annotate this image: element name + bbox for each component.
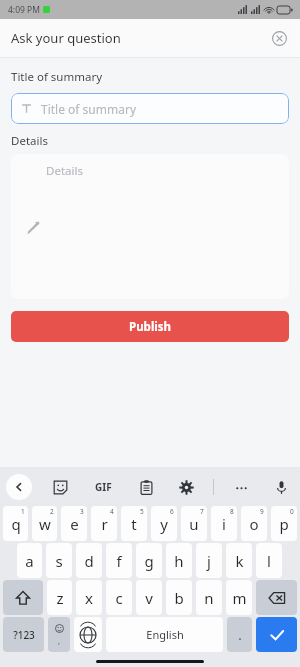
button[interactable]: n bbox=[196, 580, 222, 615]
staticText: p bbox=[279, 514, 289, 534]
button[interactable]: g bbox=[136, 543, 162, 578]
button[interactable]: p bbox=[271, 506, 297, 541]
staticText: u bbox=[189, 514, 199, 534]
button[interactable]: v bbox=[136, 580, 162, 615]
staticText: a bbox=[25, 551, 34, 571]
staticText: GIF bbox=[95, 480, 112, 494]
button[interactable]: u bbox=[181, 506, 207, 541]
button[interactable]: Done bbox=[256, 617, 297, 652]
staticText: 1 bbox=[21, 507, 25, 516]
button[interactable]: t bbox=[121, 506, 147, 541]
button[interactable]: Sticker bbox=[47, 474, 73, 500]
button[interactable]: Shift bbox=[3, 580, 43, 615]
staticText: d bbox=[84, 551, 94, 571]
staticText: x bbox=[85, 588, 93, 608]
staticText: m bbox=[232, 588, 247, 608]
button[interactable]: GIF bbox=[88, 474, 118, 500]
button[interactable]: ?123 bbox=[3, 617, 44, 652]
staticText: 8 bbox=[230, 507, 234, 516]
button[interactable]: Title of summary bbox=[11, 93, 289, 124]
button[interactable]: s bbox=[46, 543, 72, 578]
button[interactable]: Emoji bbox=[48, 617, 70, 652]
staticText: 2 bbox=[50, 507, 54, 516]
button[interactable]: Voice input bbox=[268, 474, 294, 500]
staticText: b bbox=[174, 588, 184, 608]
button[interactable]: Backspace bbox=[256, 580, 297, 615]
button[interactable]: r bbox=[91, 506, 117, 541]
button[interactable]: q bbox=[3, 506, 28, 541]
staticText: Title of summary bbox=[11, 69, 103, 85]
staticText: j bbox=[207, 551, 211, 571]
staticText: r bbox=[101, 514, 108, 534]
button[interactable]: Back bbox=[6, 474, 32, 500]
button[interactable]: f bbox=[106, 543, 132, 578]
button[interactable]: Settings bbox=[173, 474, 199, 500]
staticText: 9 bbox=[260, 507, 264, 516]
staticText: , bbox=[58, 635, 61, 646]
staticText: w bbox=[39, 514, 51, 534]
staticText: f bbox=[116, 551, 122, 571]
button[interactable]: k bbox=[226, 543, 252, 578]
staticText: . bbox=[238, 626, 242, 644]
staticText: h bbox=[174, 551, 184, 571]
button[interactable]: Change language bbox=[74, 617, 102, 652]
staticText: g bbox=[144, 551, 154, 571]
button[interactable]: Details bbox=[11, 154, 289, 299]
button[interactable]: Publish bbox=[11, 311, 289, 342]
staticText: i bbox=[222, 514, 226, 534]
staticText: Ask your question bbox=[11, 29, 121, 47]
staticText: v bbox=[145, 588, 153, 608]
button[interactable]: m bbox=[226, 580, 252, 615]
staticText: ?123 bbox=[13, 628, 35, 642]
button[interactable]: a bbox=[17, 543, 42, 578]
button[interactable]: h bbox=[166, 543, 192, 578]
button[interactable]: w bbox=[32, 506, 57, 541]
staticText: 7 bbox=[200, 507, 204, 516]
staticText: 3 bbox=[80, 507, 84, 516]
staticText: 4:09 PM bbox=[8, 4, 40, 16]
staticText: q bbox=[11, 514, 21, 534]
staticText: English bbox=[146, 627, 184, 642]
button[interactable]: o bbox=[241, 506, 267, 541]
button[interactable]: j bbox=[196, 543, 222, 578]
button[interactable]: d bbox=[76, 543, 102, 578]
button[interactable]: c bbox=[106, 580, 132, 615]
staticText: z bbox=[56, 588, 64, 608]
staticText: Details bbox=[46, 163, 83, 179]
button[interactable]: y bbox=[151, 506, 177, 541]
staticText: 5 bbox=[140, 507, 144, 516]
staticText: 4 bbox=[110, 507, 114, 516]
staticText: c bbox=[115, 588, 123, 608]
button[interactable]: Clipboard bbox=[133, 474, 159, 500]
button[interactable]: . bbox=[227, 617, 252, 652]
staticText: y bbox=[160, 514, 168, 534]
staticText: o bbox=[249, 514, 259, 534]
button[interactable]: English bbox=[106, 617, 223, 652]
staticText: Details bbox=[11, 133, 48, 149]
button[interactable]: i bbox=[211, 506, 237, 541]
button[interactable]: x bbox=[76, 580, 102, 615]
staticText: l bbox=[267, 551, 271, 571]
staticText: Title of summary bbox=[41, 101, 137, 117]
staticText: e bbox=[70, 514, 79, 534]
staticText: s bbox=[55, 551, 63, 571]
staticText: n bbox=[204, 588, 214, 608]
button[interactable]: Close bbox=[266, 25, 292, 51]
staticText: Publish bbox=[129, 319, 171, 335]
staticText: 0 bbox=[290, 507, 294, 516]
button[interactable]: l bbox=[256, 543, 282, 578]
staticText: t bbox=[131, 514, 137, 534]
button[interactable]: e bbox=[61, 506, 87, 541]
staticText: k bbox=[235, 551, 244, 571]
button[interactable]: b bbox=[166, 580, 192, 615]
button[interactable]: More bbox=[228, 474, 254, 500]
button[interactable]: z bbox=[47, 580, 72, 615]
staticText: 6 bbox=[170, 507, 174, 516]
